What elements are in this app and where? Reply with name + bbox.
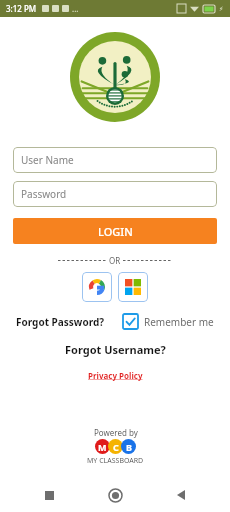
button[interactable]: Sign in with Google xyxy=(82,272,112,302)
staticText: OR xyxy=(109,255,121,266)
staticText: User Name xyxy=(21,153,74,167)
button[interactable]: Remember me xyxy=(123,314,214,329)
staticText: C xyxy=(113,441,119,453)
staticText: ... xyxy=(72,3,79,14)
button[interactable]: Forgot Password? xyxy=(16,315,105,329)
staticText: LOGIN xyxy=(98,224,133,239)
staticText: MY CLASSBOARD xyxy=(87,456,144,466)
button[interactable]: Privacy Policy xyxy=(88,370,143,381)
staticText: Powered by xyxy=(94,427,138,438)
button[interactable]: User Name xyxy=(13,147,217,173)
staticText: B xyxy=(126,441,132,453)
button[interactable]: Recents xyxy=(32,478,66,512)
button[interactable]: Forgot Username? xyxy=(65,342,166,357)
staticText: Remember me xyxy=(144,315,214,329)
button[interactable]: Password xyxy=(13,181,217,207)
staticText: ⚡ xyxy=(219,5,224,12)
staticText: Password xyxy=(21,187,67,201)
button[interactable]: Home xyxy=(98,478,132,512)
staticText: M xyxy=(98,441,107,453)
button[interactable]: Back xyxy=(164,478,198,512)
staticText: 3:12 PM xyxy=(6,3,37,14)
button[interactable]: Sign in with Microsoft xyxy=(118,272,148,302)
button[interactable]: LOGIN xyxy=(13,218,217,244)
